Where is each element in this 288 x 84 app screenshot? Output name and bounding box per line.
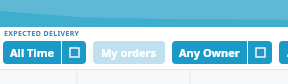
button[interactable]: Clear All Time filter <box>62 41 86 64</box>
button[interactable]: Any Owner <box>172 41 272 64</box>
staticText: My orders <box>101 45 157 60</box>
button[interactable]: All Time <box>3 41 86 64</box>
button[interactable]: Clear Any Owner filter <box>248 41 272 64</box>
staticText: Any Owner <box>179 45 240 60</box>
button[interactable]: Any Status <box>279 41 288 64</box>
staticText: EXPECTED DELIVERY <box>4 29 80 39</box>
button[interactable]: My orders <box>93 41 165 64</box>
staticText: All Time <box>10 45 54 60</box>
